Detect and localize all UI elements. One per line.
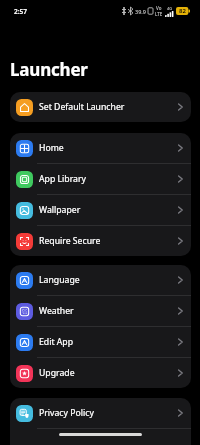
button[interactable]: Home: [10, 133, 191, 163]
button[interactable]: More settings: [10, 429, 191, 445]
staticText: 4G: [167, 6, 173, 11]
button[interactable]: Set Default Launcher: [10, 92, 191, 122]
button[interactable]: Upgrade: [10, 358, 191, 388]
staticText: Wallpaper: [39, 204, 81, 216]
button[interactable]: Privacy Policy: [10, 398, 191, 428]
staticText: Set Default Launcher: [39, 101, 125, 113]
staticText: 82: [179, 7, 186, 15]
button[interactable]: Weather: [10, 296, 191, 326]
button[interactable]: Wallpaper: [10, 195, 191, 225]
button[interactable]: Language: [10, 265, 191, 295]
staticText: App Library: [39, 173, 86, 185]
button[interactable]: Edit App: [10, 327, 191, 357]
button[interactable]: Require Secure: [10, 226, 191, 256]
staticText: Require Secure: [39, 235, 101, 247]
staticText: LTE: [155, 11, 163, 17]
staticText: 2:57: [14, 7, 27, 16]
button[interactable]: App Library: [10, 164, 191, 194]
staticText: Weather: [39, 305, 74, 317]
staticText: 39.9: [135, 8, 146, 15]
staticText: Upgrade: [39, 367, 75, 379]
staticText: Home: [39, 142, 64, 154]
staticText: Edit App: [39, 336, 74, 348]
staticText: Privacy Policy: [39, 407, 94, 419]
staticText: Launcher: [10, 58, 88, 81]
staticText: Language: [39, 274, 80, 286]
staticText: Vo: [156, 5, 162, 11]
